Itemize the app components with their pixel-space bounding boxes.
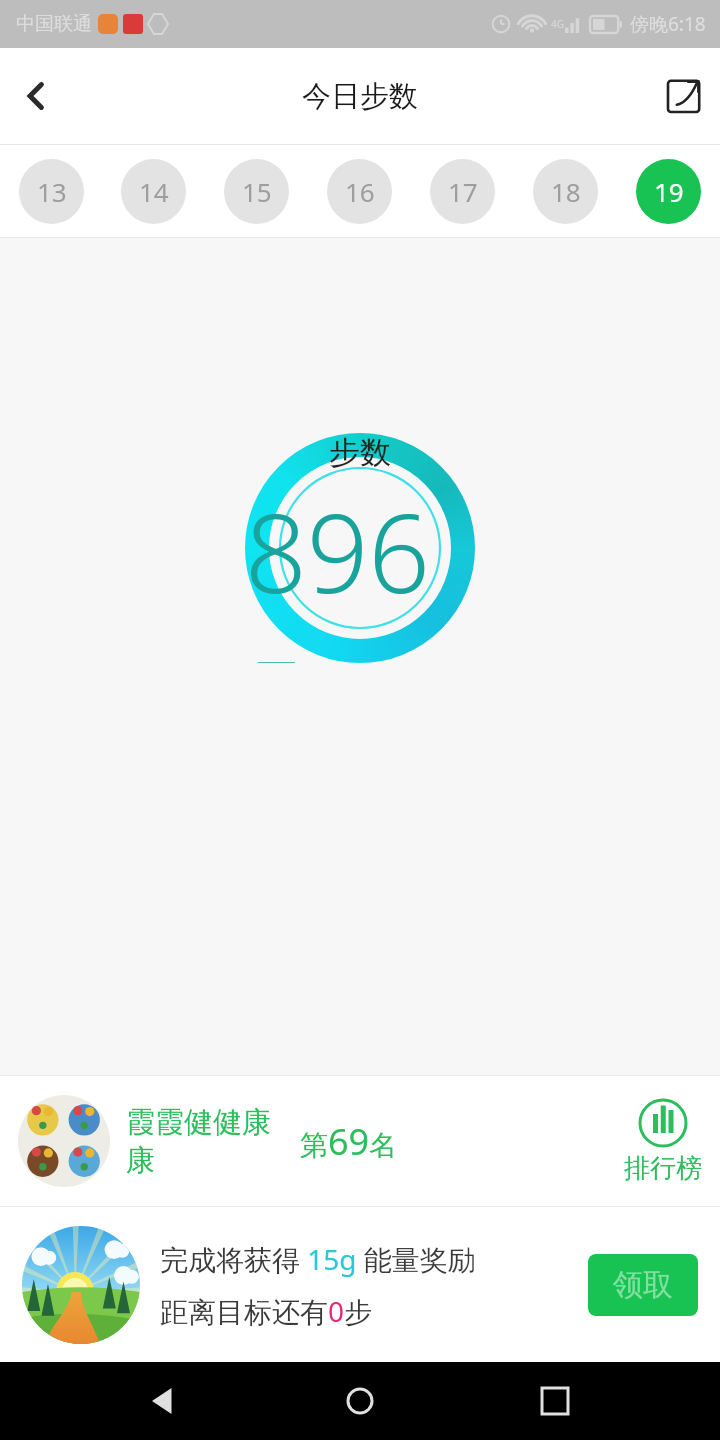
button[interactable]: 14 xyxy=(121,159,186,224)
button[interactable]: 19 xyxy=(636,159,701,224)
staticText: 19 xyxy=(654,174,684,209)
staticText: 13 xyxy=(37,174,67,209)
button[interactable]: 15 xyxy=(224,159,289,224)
button[interactable]: Recent apps xyxy=(525,1371,585,1431)
button[interactable]: 17 xyxy=(430,159,495,224)
staticText: 14 xyxy=(139,174,169,209)
staticText: 16 xyxy=(345,174,375,209)
button[interactable]: 18 xyxy=(533,159,598,224)
staticText: 步数 xyxy=(329,433,391,472)
staticText: 完成将获得 15g 能量奖励 xyxy=(160,1240,476,1278)
staticText: 4G xyxy=(551,17,564,31)
staticText: 15 xyxy=(242,174,272,209)
button[interactable]: 13 xyxy=(19,159,84,224)
staticText: 中国联通 xyxy=(16,12,92,36)
staticText: 领取 xyxy=(613,1266,673,1304)
button[interactable]: Share xyxy=(648,60,720,132)
staticText: 18 xyxy=(551,174,581,209)
staticText: 今日步数 xyxy=(302,78,418,115)
button[interactable]: 霞霞健健康康 xyxy=(0,1076,720,1206)
button[interactable]: Back xyxy=(135,1371,195,1431)
staticText: 距离目标还有0步 xyxy=(160,1292,373,1330)
button[interactable]: 排行榜 xyxy=(624,1098,702,1185)
staticText: 17 xyxy=(448,174,478,209)
staticText: 第69名 xyxy=(300,1117,398,1166)
staticText: 排行榜 xyxy=(624,1152,702,1185)
button[interactable]: Back xyxy=(0,60,72,132)
button[interactable]: 领取 xyxy=(588,1254,698,1316)
staticText: 霞霞健健康康 xyxy=(126,1104,276,1179)
button[interactable]: 16 xyxy=(327,159,392,224)
button[interactable]: Home xyxy=(330,1371,390,1431)
staticText: 8965 xyxy=(245,478,475,663)
staticText: 傍晚6:18 xyxy=(630,11,706,37)
